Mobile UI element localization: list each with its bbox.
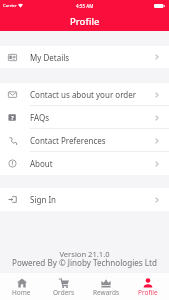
button[interactable]: Sign In [0,188,169,211]
button[interactable]: My Details [0,46,169,68]
button[interactable]: Contact us about your order [0,83,169,106]
button[interactable]: ? [0,106,169,129]
staticText: Home [12,288,31,297]
staticText: Rewards [93,288,120,297]
staticText: Powered By © Jinoby Technologies Ltd [12,257,157,268]
staticText: Contact us about your order [30,89,137,100]
staticText: Version 21.1.0 [59,249,110,259]
staticText: Carrier [3,3,17,9]
staticText: Contact Preferences [30,135,106,146]
staticText: FAQs [30,112,50,123]
staticText: Profile [138,288,158,297]
button[interactable]: About [0,152,169,175]
button[interactable]: Orders [43,273,85,300]
staticText: ? [11,114,14,122]
button[interactable]: Rewards [85,273,127,300]
button[interactable]: Contact Preferences [0,129,169,152]
staticText: 4:55 AM [76,3,94,9]
button[interactable]: Home [0,273,43,300]
staticText: Profile [70,15,100,28]
staticText: My Details [30,52,70,63]
staticText: Sign In [30,194,57,205]
staticText: Orders [53,288,75,297]
button[interactable]: Profile [127,273,169,300]
staticText: About [30,158,53,169]
